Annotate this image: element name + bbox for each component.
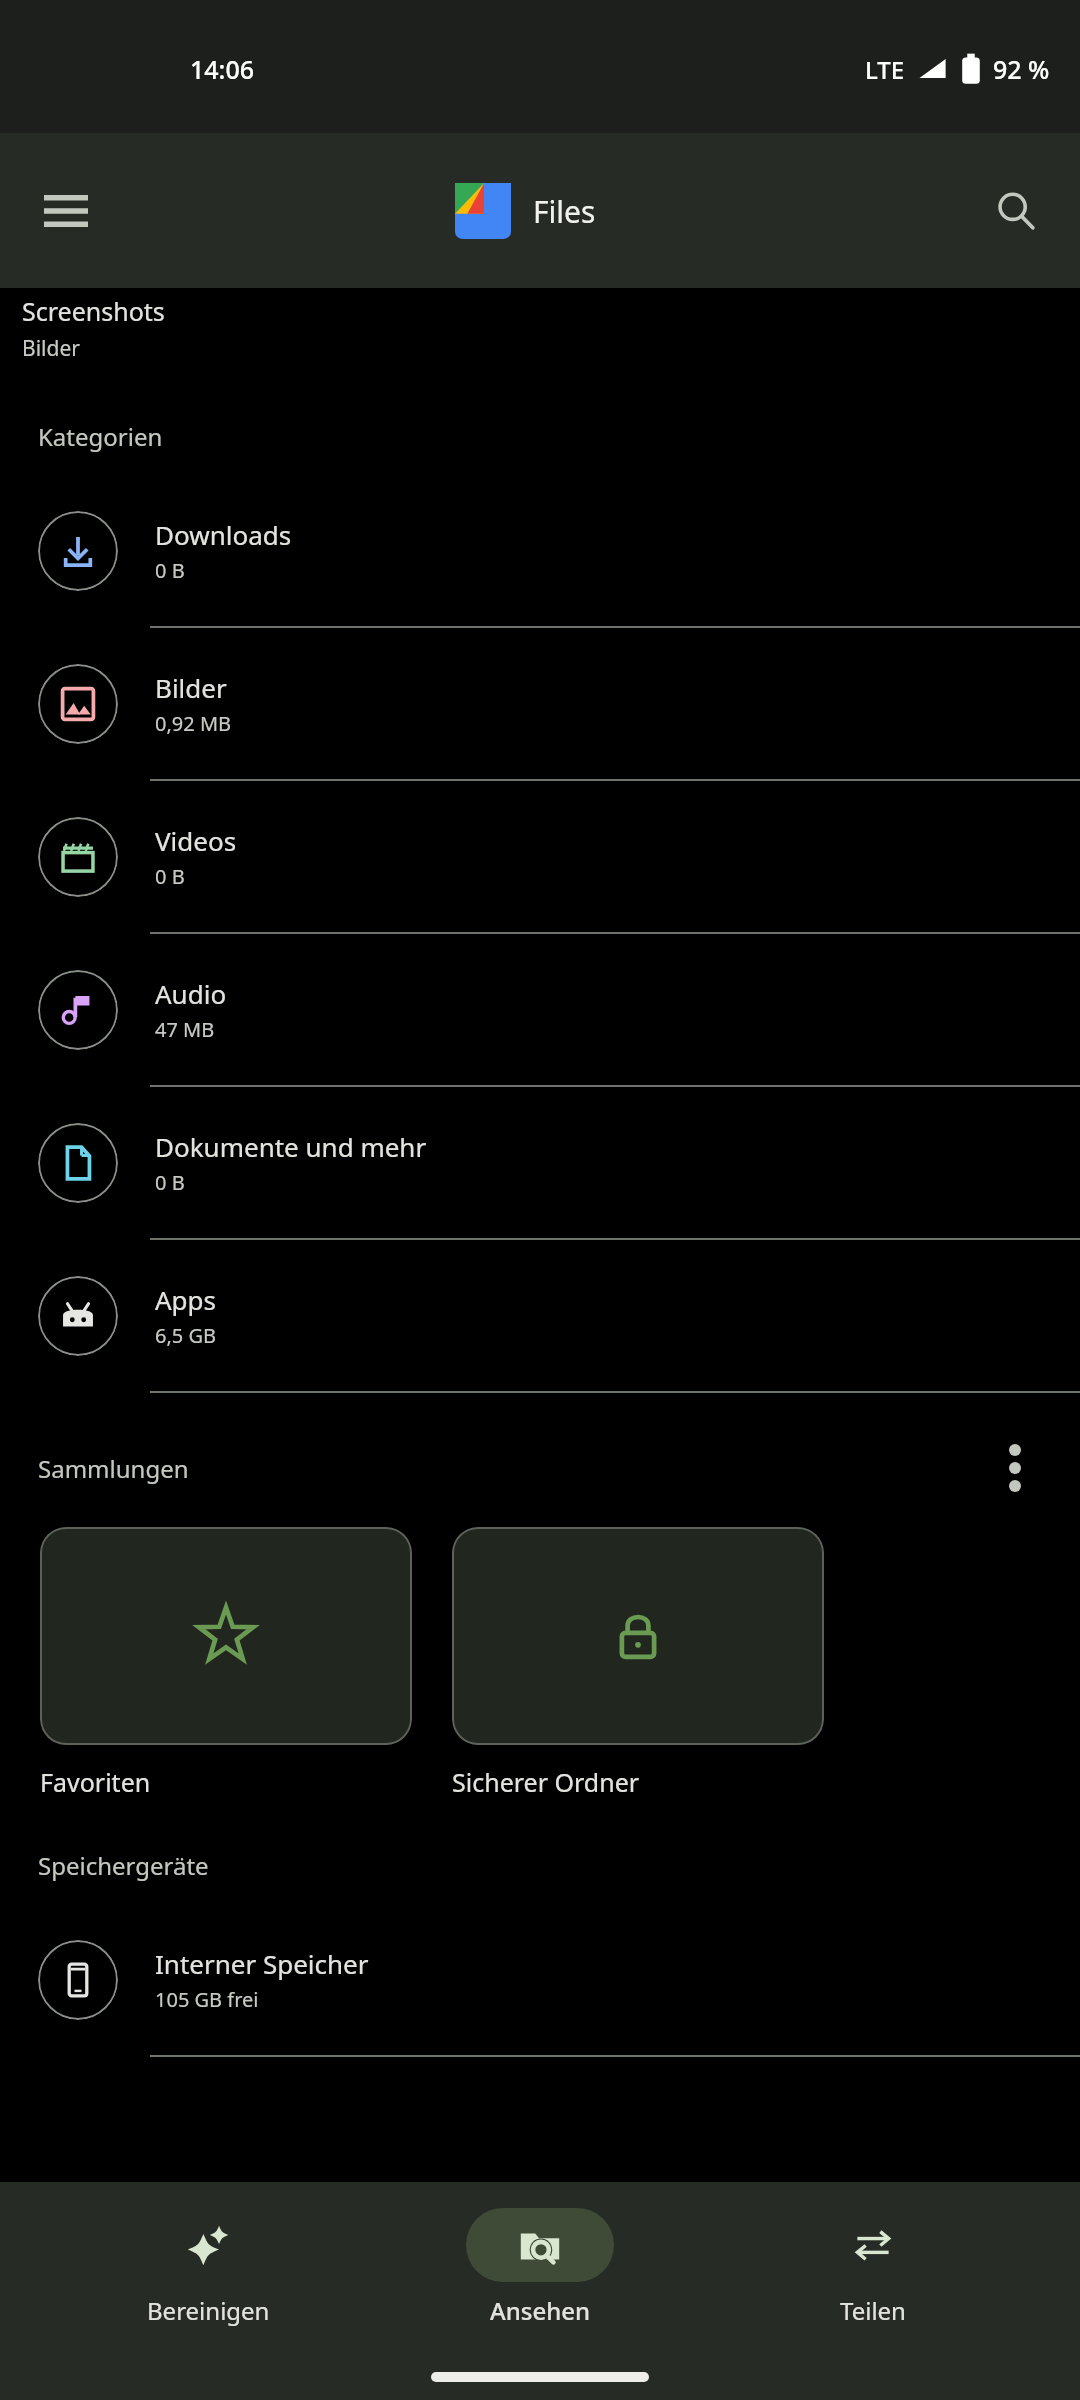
staticText: 47 MB bbox=[155, 1016, 215, 1043]
staticText: Screenshots bbox=[22, 294, 165, 328]
staticText: 92 % bbox=[993, 52, 1050, 86]
staticText: 0,92 MB bbox=[155, 710, 232, 737]
staticText: Bilder bbox=[22, 334, 80, 363]
staticText: Downloads bbox=[155, 517, 292, 552]
button[interactable]: More options bbox=[978, 1431, 1052, 1505]
button[interactable]: Audio bbox=[0, 934, 1080, 1087]
staticText: Speichergeräte bbox=[38, 1849, 209, 1882]
staticText: Bereinigen bbox=[147, 2294, 270, 2327]
staticText: Ansehen bbox=[490, 2294, 591, 2327]
button[interactable]: Screenshots bbox=[22, 294, 165, 363]
staticText: 0 B bbox=[155, 1169, 185, 1196]
staticText: 14:06 bbox=[190, 52, 255, 86]
button[interactable]: Downloads bbox=[0, 475, 1080, 628]
button[interactable]: Search bbox=[972, 167, 1060, 255]
staticText: 0 B bbox=[155, 557, 185, 584]
staticText: 105 GB frei bbox=[155, 1986, 259, 2013]
staticText: Favoriten bbox=[40, 1765, 151, 1799]
staticText: Sicherer Ordner bbox=[452, 1765, 640, 1799]
staticText: Audio bbox=[155, 976, 227, 1011]
staticText: Apps bbox=[155, 1282, 217, 1317]
staticText: Bilder bbox=[155, 670, 227, 705]
staticText: Interner Speicher bbox=[155, 1946, 369, 1981]
button[interactable]: Dokumente und mehr bbox=[0, 1087, 1080, 1240]
staticText: 0 B bbox=[155, 863, 185, 890]
button[interactable]: Bilder bbox=[0, 628, 1080, 781]
button[interactable]: Ansehen bbox=[415, 2208, 665, 2327]
staticText: 6,5 GB bbox=[155, 1322, 216, 1349]
staticText: Files bbox=[533, 191, 596, 232]
button[interactable]: Interner Speicher bbox=[0, 1904, 1080, 2057]
button[interactable]: Teilen bbox=[748, 2208, 998, 2327]
staticText: Teilen bbox=[840, 2294, 906, 2327]
button[interactable]: Sicherer Ordner bbox=[452, 1527, 824, 1745]
staticText: Dokumente und mehr bbox=[155, 1129, 427, 1164]
staticText: Kategorien bbox=[38, 420, 163, 453]
staticText: LTE bbox=[865, 53, 905, 86]
button[interactable]: Bereinigen bbox=[83, 2208, 333, 2327]
button[interactable]: Apps bbox=[0, 1240, 1080, 1393]
button[interactable]: Favoriten bbox=[40, 1527, 412, 1745]
staticText: Sammlungen bbox=[38, 1452, 189, 1485]
staticText: Videos bbox=[155, 823, 237, 858]
button[interactable]: Videos bbox=[0, 781, 1080, 934]
button[interactable]: Menu bbox=[22, 167, 110, 255]
